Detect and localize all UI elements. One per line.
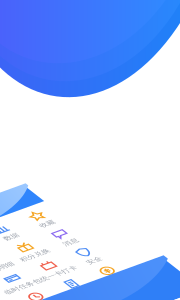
button[interactable]: 激活 (0, 262, 100, 300)
button[interactable]: 开发 (0, 174, 100, 256)
button[interactable]: 临时任务包 (100, 262, 180, 300)
button[interactable]: 积分消费 (100, 86, 180, 168)
staticText: 开发 (30, 225, 70, 250)
button[interactable]: 通知 (0, 86, 100, 168)
